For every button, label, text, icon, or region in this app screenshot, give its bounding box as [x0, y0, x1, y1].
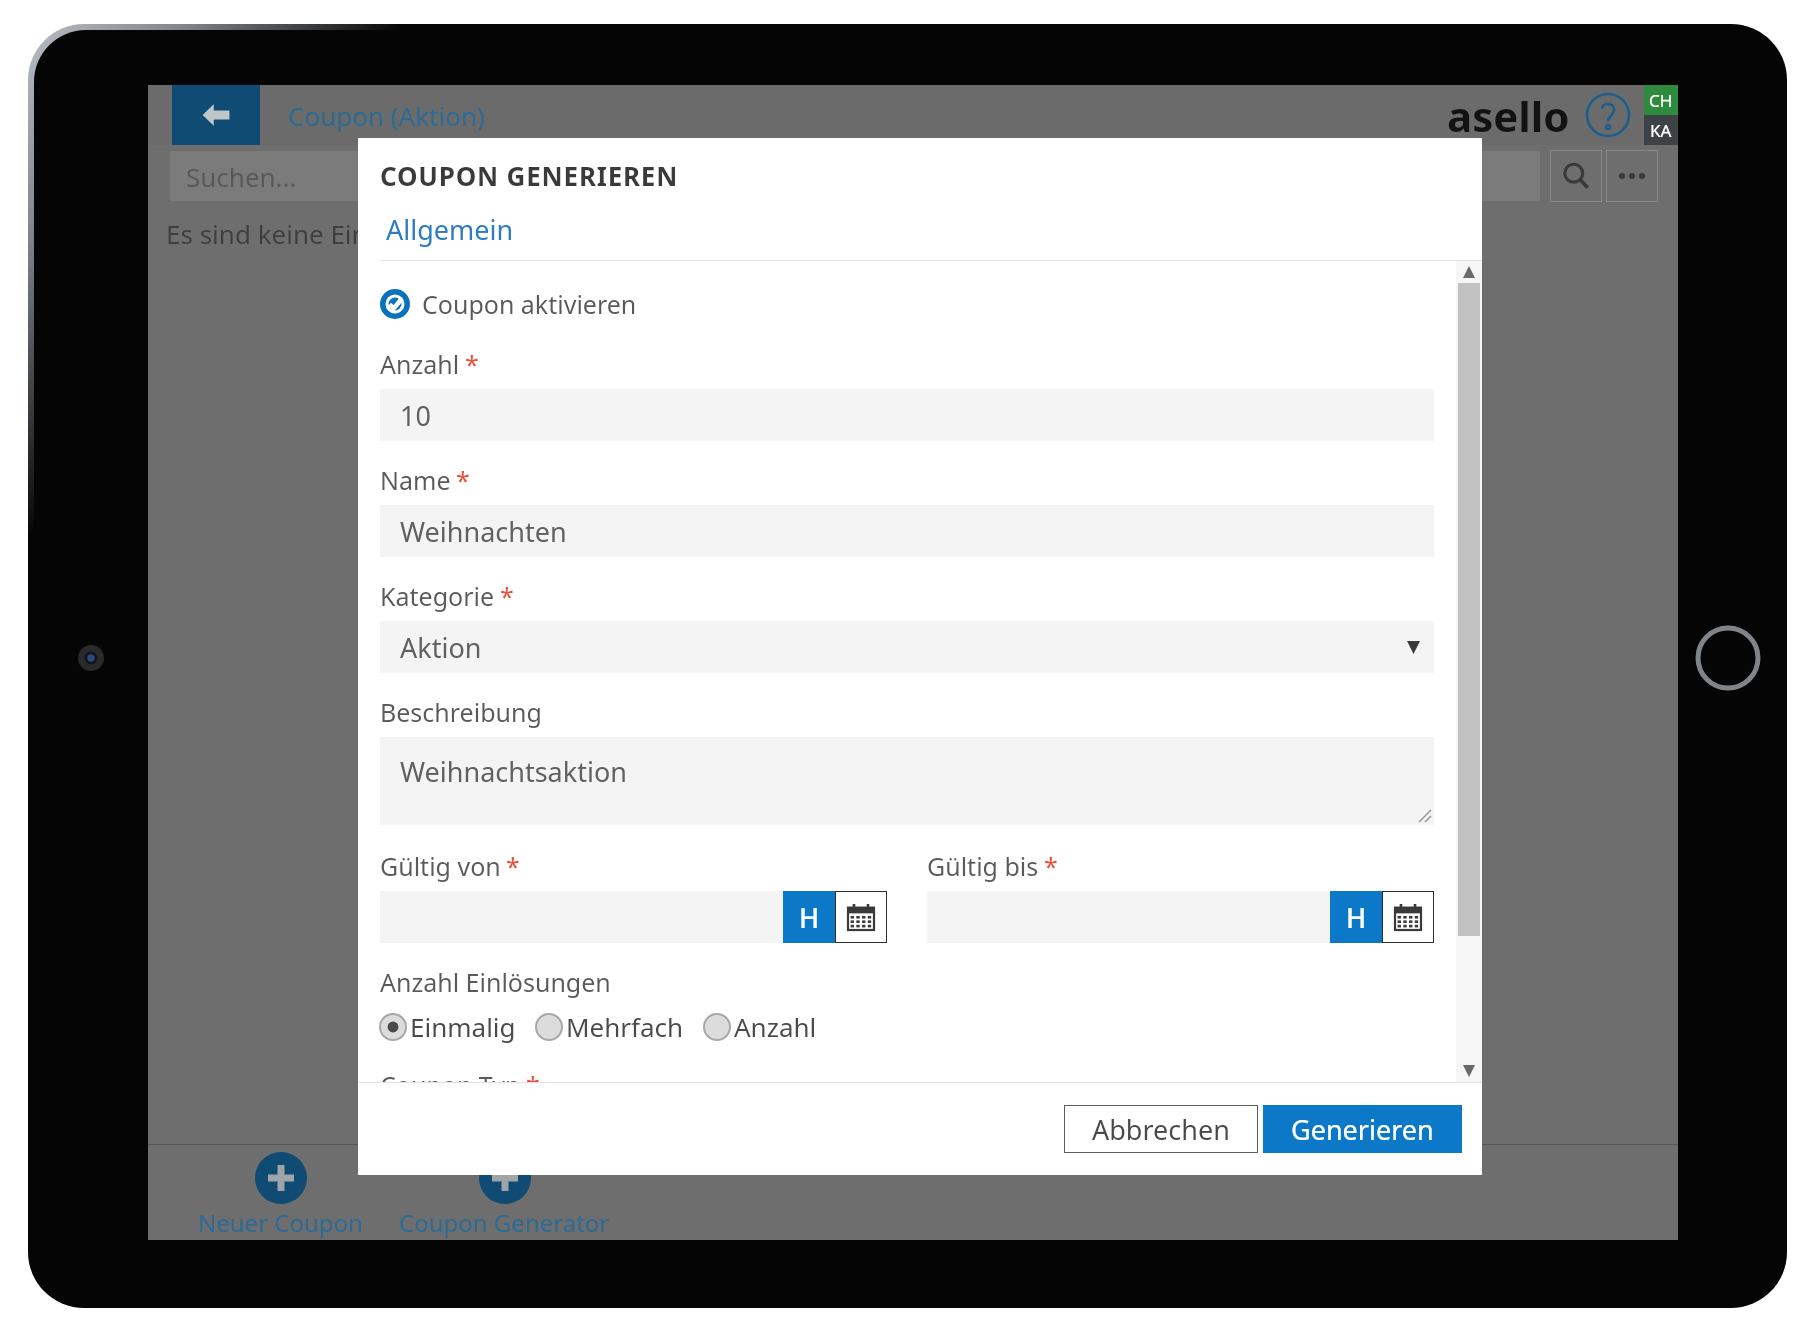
button[interactable]: Kalender	[1382, 891, 1434, 943]
staticText: *	[465, 347, 479, 381]
staticText: *	[506, 849, 520, 883]
staticText: Abbrechen	[1092, 1111, 1230, 1148]
staticText: Anzahl Einlösungen	[380, 965, 611, 999]
staticText: Generieren	[1291, 1111, 1434, 1148]
staticText: Beschreibung	[380, 695, 542, 729]
button[interactable]: Einmalig	[380, 1009, 516, 1044]
staticText: Anzahl	[734, 1009, 817, 1044]
staticText: Anzahl	[380, 347, 460, 381]
button[interactable]: Aktion	[380, 621, 1434, 673]
button[interactable]: Search	[1550, 150, 1602, 202]
button[interactable]: Weihnachtsaktion	[380, 737, 1434, 825]
staticText: Name	[380, 463, 451, 497]
staticText: COUPON GENERIEREN	[380, 158, 679, 193]
button[interactable]: Coupon Generator	[399, 1152, 610, 1239]
button[interactable]: Heute	[783, 891, 835, 943]
staticText: Gültig von	[380, 849, 501, 883]
staticText: Aktion	[400, 629, 482, 666]
button[interactable]: Mehrfach	[536, 1009, 684, 1044]
staticText: Kategorie	[380, 579, 495, 613]
button[interactable]: Back	[172, 85, 260, 145]
staticText: *	[456, 463, 470, 497]
staticText: Mehrfach	[566, 1009, 684, 1044]
button[interactable]: Scroll down	[1456, 1060, 1482, 1082]
staticText: Coupon Generator	[399, 1206, 610, 1239]
staticText: *	[500, 579, 514, 613]
button[interactable]: Neuer Coupon	[198, 1152, 363, 1239]
staticText: asello	[1447, 87, 1570, 144]
button[interactable]: Kalender	[835, 891, 887, 943]
staticText: Coupon aktivieren	[422, 287, 637, 321]
staticText: CH	[1649, 89, 1673, 112]
button[interactable]: Suchen...	[170, 151, 1540, 201]
staticText: Suchen...	[186, 159, 297, 194]
staticText: Weihnachten	[400, 513, 567, 550]
staticText: *	[526, 1068, 540, 1082]
staticText: 10	[400, 397, 431, 434]
staticText: Gültig bis	[927, 849, 1039, 883]
button[interactable]	[927, 891, 1434, 943]
button[interactable]: Generieren	[1263, 1105, 1462, 1153]
button[interactable]: Allgemein	[386, 211, 514, 248]
button[interactable]: 10	[380, 389, 1434, 441]
button[interactable]: Heute	[1330, 891, 1382, 943]
button[interactable]: Abbrechen	[1064, 1105, 1258, 1153]
staticText: Coupon Typ	[380, 1068, 521, 1082]
button[interactable]: Scroll up	[1456, 261, 1482, 283]
staticText: Einmalig	[410, 1009, 516, 1044]
staticText: Es sind keine Einträge	[166, 216, 433, 251]
staticText: Coupon (Aktion)	[288, 98, 485, 133]
button[interactable]: Weihnachten	[380, 505, 1434, 557]
button[interactable]: Coupon aktivieren	[380, 287, 637, 321]
staticText: KA	[1650, 119, 1672, 142]
button[interactable]: More options	[1606, 150, 1658, 202]
button[interactable]: Help	[1582, 89, 1634, 141]
staticText: Weihnachtsaktion	[400, 753, 627, 790]
staticText: H	[799, 899, 820, 936]
button[interactable]	[380, 891, 887, 943]
button[interactable]: Anzahl	[704, 1009, 817, 1044]
staticText: Neuer Coupon	[198, 1206, 363, 1239]
staticText: *	[1044, 849, 1058, 883]
staticText: H	[1346, 899, 1367, 936]
